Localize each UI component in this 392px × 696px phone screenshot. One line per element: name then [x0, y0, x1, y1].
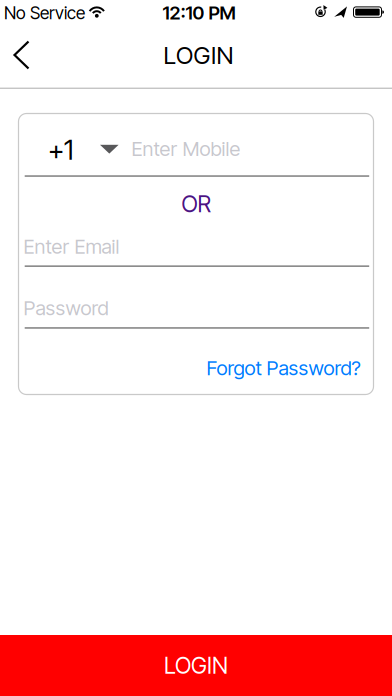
staticText: No Service	[4, 3, 85, 23]
staticText: Enter Email	[23, 235, 119, 258]
button[interactable]: +1	[48, 137, 120, 163]
staticText: Forgot Password?	[206, 356, 360, 380]
staticText: Enter Mobile	[132, 137, 241, 161]
button[interactable]: LOGIN	[0, 635, 392, 696]
button[interactable]: Forgot Password?	[206, 356, 360, 380]
button[interactable]	[6, 34, 42, 76]
staticText: Password	[23, 296, 108, 320]
staticText: OR	[181, 191, 210, 217]
staticText: LOGIN	[163, 41, 233, 69]
staticText: 12:10 PM	[162, 2, 235, 24]
staticText: +1	[48, 134, 73, 166]
staticText: LOGIN	[164, 652, 228, 679]
